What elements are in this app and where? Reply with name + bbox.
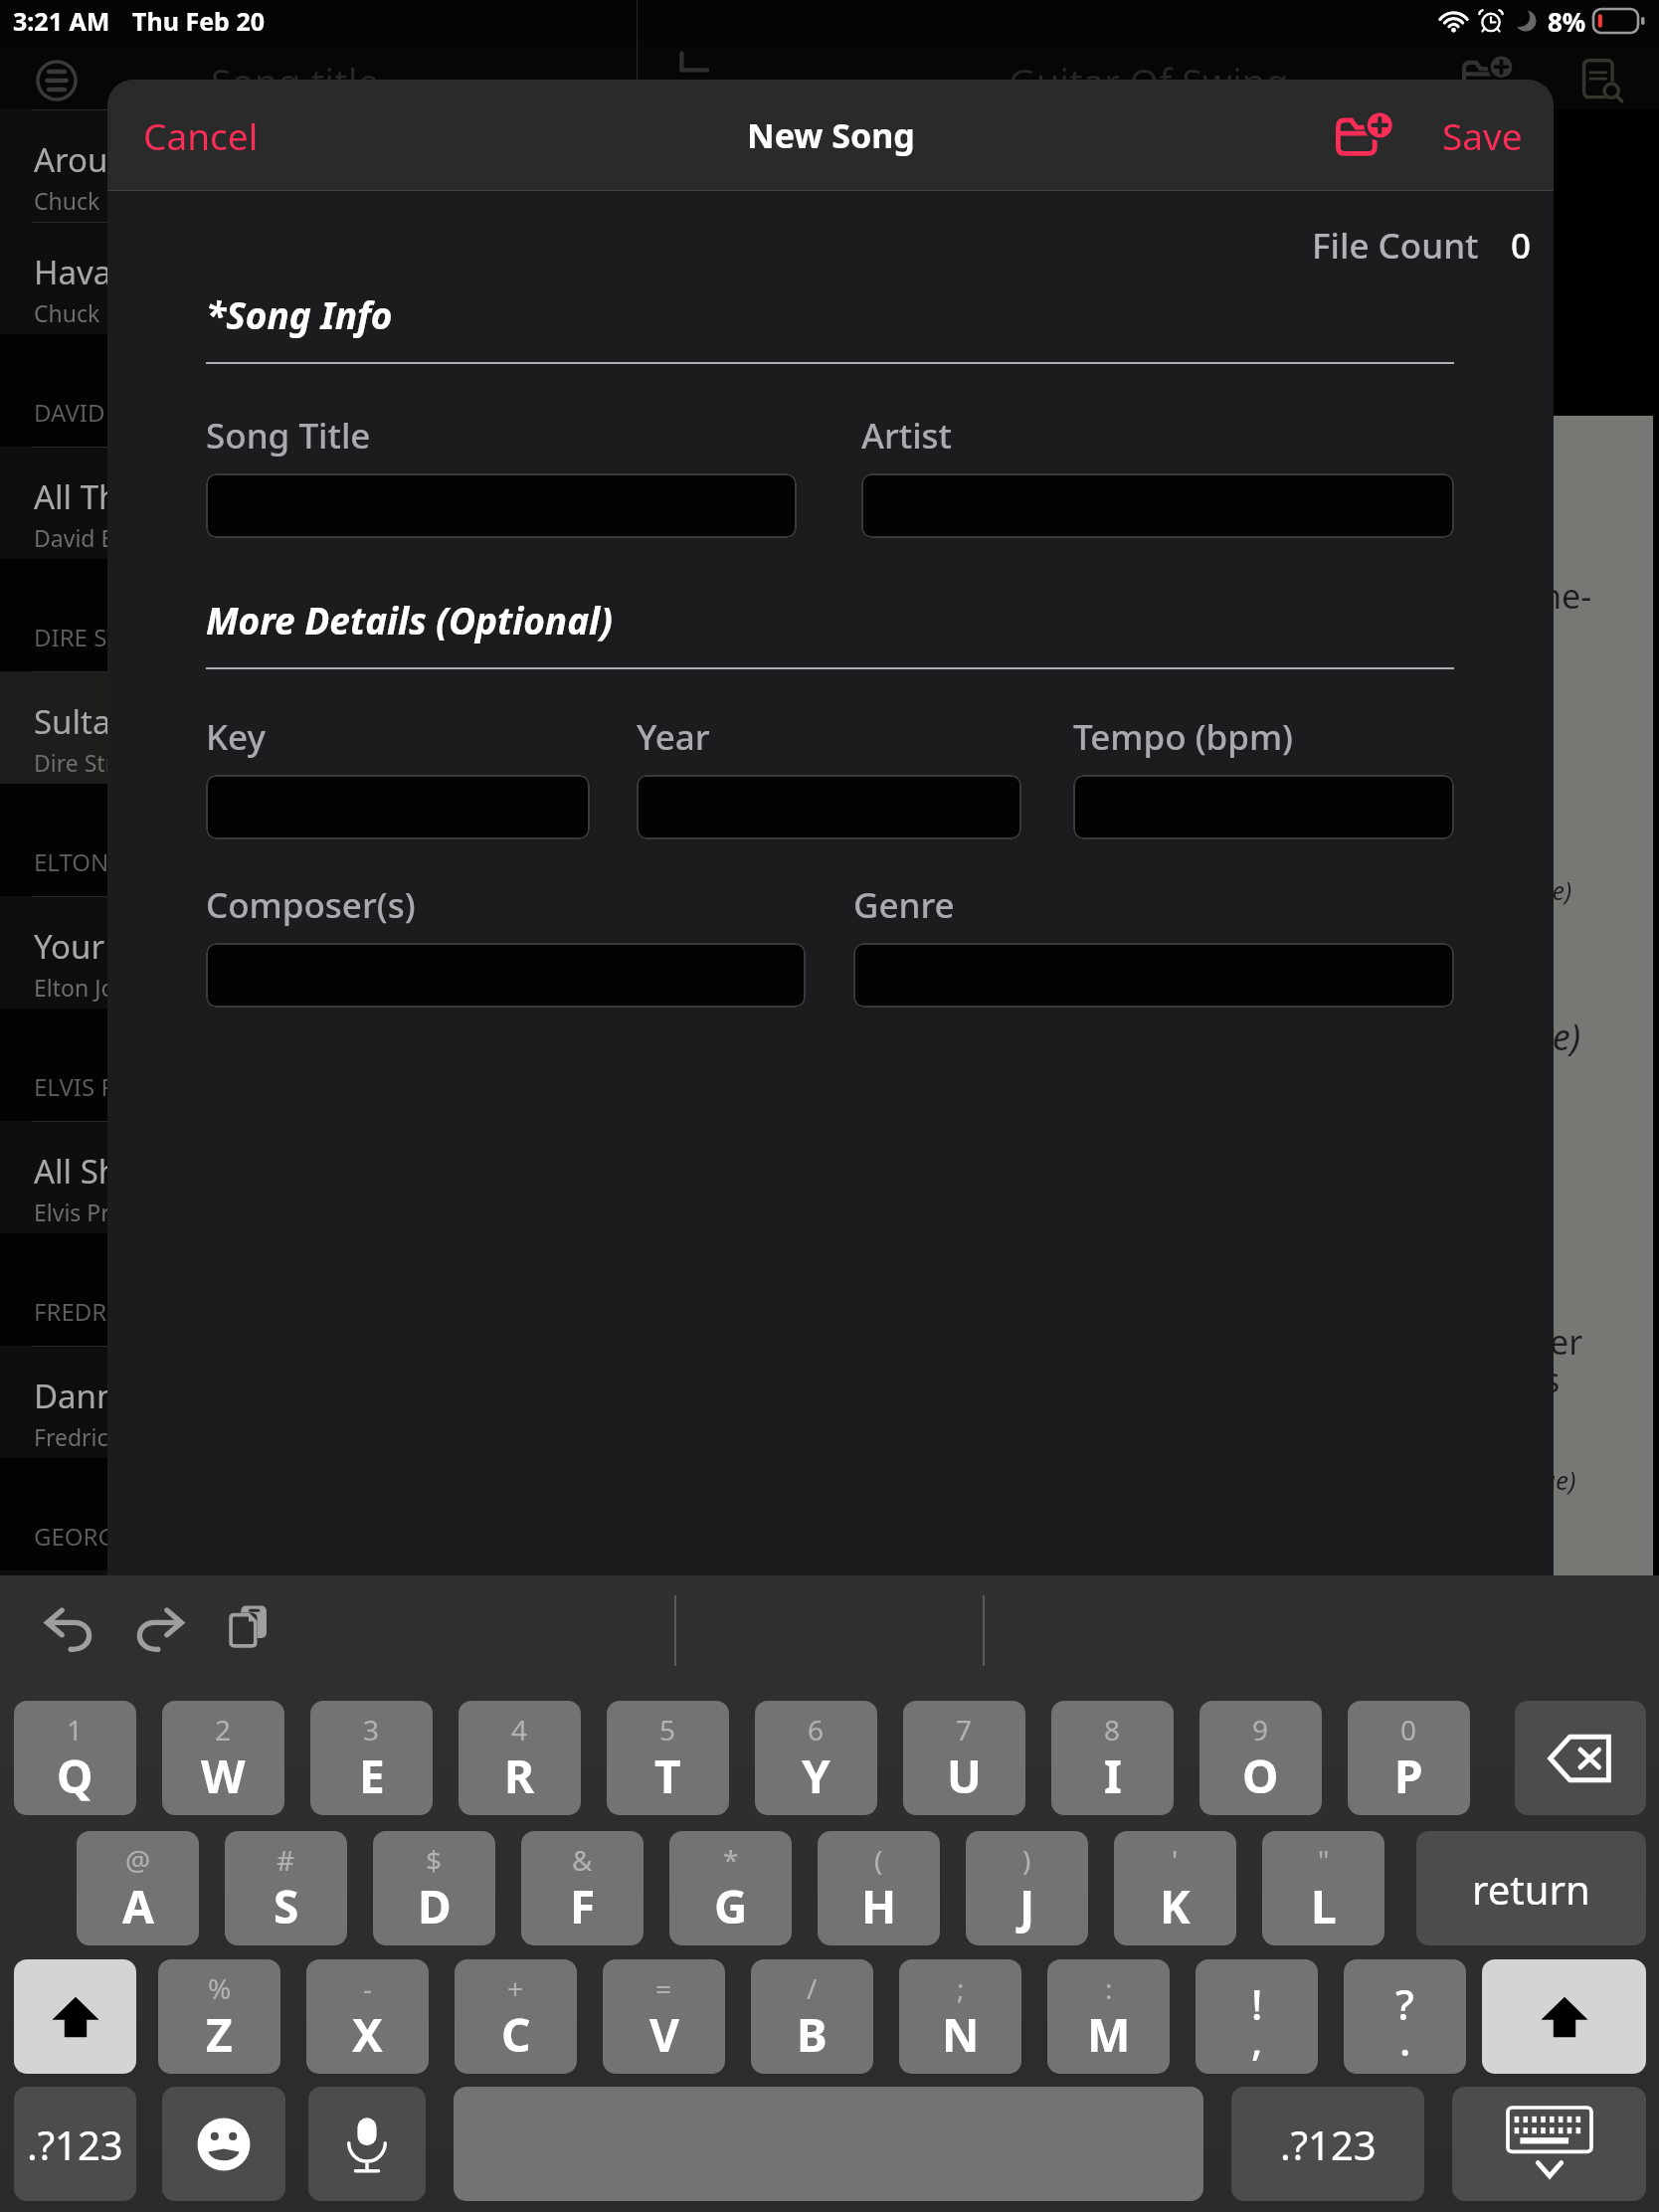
staticText: $ [426, 1841, 443, 1879]
button[interactable]: 8 [1051, 1701, 1174, 1815]
button[interactable]: % [158, 1959, 280, 2074]
staticText: Song Title [206, 412, 371, 460]
button[interactable]: ! [1196, 1959, 1318, 2074]
staticText: 1 [67, 1711, 84, 1749]
button[interactable]: 0 [1348, 1701, 1470, 1815]
button[interactable]: + [455, 1959, 577, 2074]
button[interactable]: Shift [14, 1959, 136, 2074]
staticText: Elvis Presley [34, 1197, 164, 1227]
staticText: GEORGE HARRISON [34, 1520, 256, 1553]
button[interactable]: Undo [37, 1595, 102, 1661]
button[interactable]: ; [899, 1959, 1021, 2074]
staticText: FREDRIC [34, 1295, 130, 1328]
button[interactable] [861, 473, 1454, 538]
button[interactable]: All Shook Up [0, 1121, 637, 1233]
staticText: % [208, 1969, 232, 2007]
button[interactable]: 4 [459, 1701, 581, 1815]
button[interactable]: Paste [216, 1595, 281, 1661]
button[interactable]: Menu [24, 48, 90, 113]
staticText: 9 [1252, 1711, 1269, 1749]
button[interactable]: Cancel [121, 80, 280, 191]
button[interactable]: $ [373, 1831, 495, 1945]
button[interactable]: 7 [903, 1701, 1025, 1815]
button[interactable]: / [751, 1959, 873, 2074]
staticText: D [418, 1875, 452, 1937]
staticText: 3 [363, 1711, 380, 1749]
staticText: . [1399, 2011, 1411, 2068]
staticText: @ [125, 1841, 151, 1879]
button[interactable]: @ [77, 1831, 199, 1945]
button[interactable]: 9 [1199, 1701, 1322, 1815]
staticText: Key [206, 713, 266, 761]
staticText: 6 [808, 1711, 825, 1749]
button[interactable]: Sultans Of Swing [0, 671, 637, 784]
button[interactable]: .?123 [14, 2087, 136, 2201]
staticText: : [1105, 1969, 1113, 2007]
staticText: N [942, 2003, 980, 2066]
button[interactable]: ' [1114, 1831, 1236, 1945]
button[interactable]: Redo [126, 1595, 192, 1661]
button[interactable]: = [603, 1959, 725, 2074]
button[interactable]: New folder [1309, 80, 1418, 191]
button[interactable]: 5 [607, 1701, 729, 1815]
staticText: Dire Straits [34, 747, 152, 778]
button[interactable] [206, 775, 590, 839]
button[interactable]: & [521, 1831, 644, 1945]
button[interactable]: Shift [1482, 1959, 1646, 2074]
button[interactable]: 6 [755, 1701, 877, 1815]
button[interactable]: ? [1344, 1959, 1466, 2074]
button[interactable]: All The Young Dudes [0, 447, 637, 559]
button[interactable] [637, 775, 1021, 839]
staticText: ) [1022, 1841, 1031, 1879]
staticText: er [1550, 1319, 1583, 1365]
button[interactable]: Dictation [308, 2087, 426, 2201]
button[interactable]: : [1047, 1959, 1170, 2074]
button[interactable]: - [306, 1959, 429, 2074]
button[interactable]: Danny's Song [0, 1346, 637, 1458]
staticText: ( [874, 1841, 883, 1879]
button[interactable] [206, 943, 806, 1008]
button[interactable]: " [1262, 1831, 1384, 1945]
button[interactable]: Your Song [0, 896, 637, 1009]
button[interactable]: .?123 [1231, 2087, 1424, 2201]
staticText: X [352, 2003, 383, 2066]
staticText: gue) [1526, 1462, 1576, 1497]
button[interactable]: Hide keyboard [1452, 2087, 1646, 2201]
staticText: File Count [1312, 222, 1479, 270]
staticText: 4 [511, 1711, 528, 1749]
button[interactable]: 3 [310, 1701, 433, 1815]
button[interactable]: Search lyrics [1567, 48, 1637, 115]
staticText: Fredric [34, 1421, 108, 1452]
staticText: 7 [956, 1711, 973, 1749]
staticText: = [655, 1969, 672, 2007]
button[interactable]: Around And Around [0, 109, 637, 222]
button[interactable]: ) [966, 1831, 1088, 1945]
staticText: Artist [861, 412, 953, 460]
button[interactable]: Havana Moon [0, 222, 637, 334]
button[interactable]: Save [1416, 80, 1548, 191]
button[interactable] [853, 943, 1454, 1008]
staticText: Chuck Berry [34, 185, 164, 216]
button[interactable]: 1 [14, 1701, 136, 1815]
staticText: David Bowie [34, 522, 166, 553]
staticText: New Song [747, 112, 915, 158]
staticText: * [723, 1841, 739, 1879]
staticText: Year [637, 713, 710, 761]
button[interactable]: 2 [162, 1701, 284, 1815]
button[interactable]: ( [818, 1831, 940, 1945]
button[interactable]: * [669, 1831, 792, 1945]
button[interactable]: # [225, 1831, 347, 1945]
staticText: G [714, 1875, 748, 1937]
button[interactable]: Delete [1515, 1701, 1646, 1815]
staticText: .?123 [27, 2118, 123, 2171]
button[interactable] [1073, 775, 1454, 839]
staticText: C [501, 2003, 531, 2066]
button[interactable]: Emoji [162, 2087, 285, 2201]
button[interactable] [206, 473, 797, 538]
staticText: *Song Info [206, 289, 393, 339]
staticText: V [649, 2003, 679, 2066]
staticText: ue) [1538, 873, 1572, 907]
staticText: Elton John [34, 972, 143, 1003]
button[interactable]: return [1416, 1831, 1646, 1945]
